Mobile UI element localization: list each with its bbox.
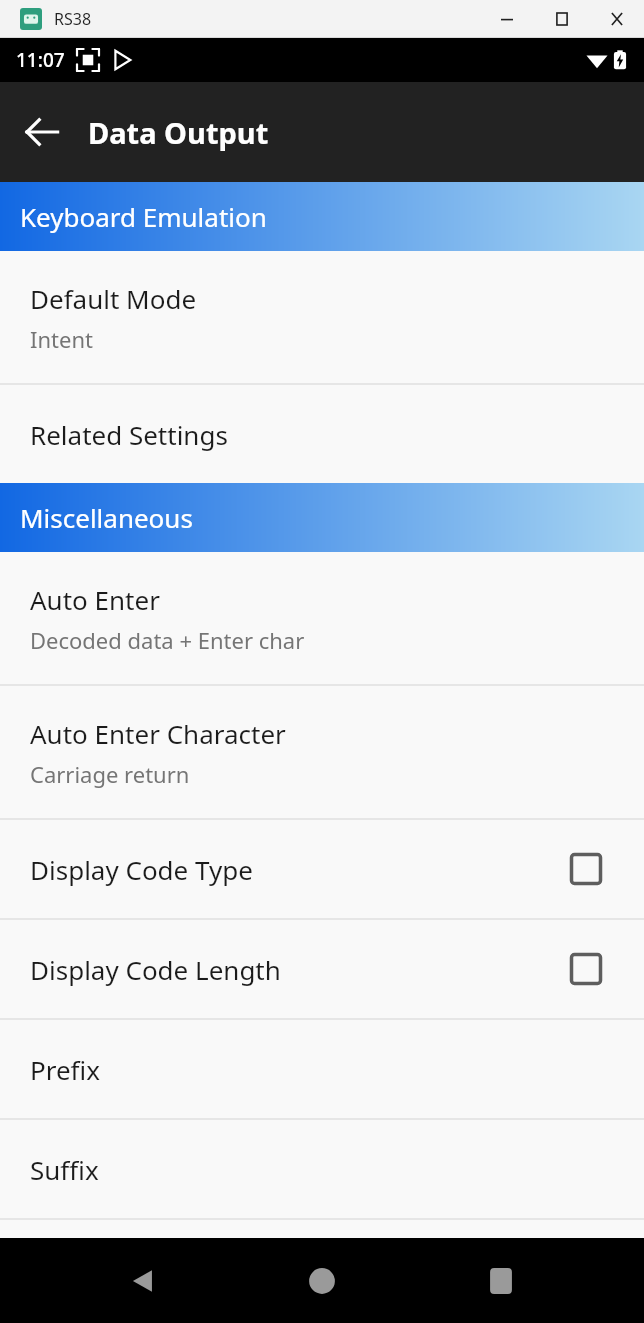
button[interactable]: Auto Enter bbox=[0, 552, 644, 684]
staticText: Intent bbox=[30, 324, 93, 354]
staticText: Miscellaneous bbox=[20, 500, 193, 535]
button[interactable]: Related Settings bbox=[0, 385, 644, 483]
staticText: Decoded data + Enter char bbox=[30, 625, 305, 655]
button[interactable]: Back bbox=[14, 104, 70, 160]
button[interactable]: Auto Enter Character bbox=[0, 686, 644, 818]
button[interactable]: Display Code Type bbox=[0, 820, 644, 918]
staticText: Prefix bbox=[30, 1052, 101, 1087]
button[interactable]: Prefix bbox=[0, 1020, 644, 1118]
button[interactable]: Minimize bbox=[479, 0, 534, 38]
staticText: Related Settings bbox=[30, 417, 228, 452]
staticText: 11:07 bbox=[16, 47, 65, 73]
staticText: Display Code Type bbox=[30, 852, 570, 887]
staticText: Auto Enter Character bbox=[30, 716, 286, 751]
staticText: Keyboard Emulation bbox=[20, 199, 267, 234]
button[interactable]: Maximize bbox=[534, 0, 589, 38]
button[interactable]: Default Mode bbox=[0, 251, 644, 383]
button[interactable]: Home bbox=[286, 1245, 358, 1317]
staticText: Carriage return bbox=[30, 759, 190, 789]
staticText: Auto Enter bbox=[30, 582, 160, 617]
button[interactable]: Display Code Length bbox=[0, 920, 644, 1018]
staticText: Display Code Length bbox=[30, 952, 570, 987]
button[interactable]: Recent apps bbox=[465, 1245, 537, 1317]
button[interactable]: Suffix bbox=[0, 1120, 644, 1218]
staticText: Default Mode bbox=[30, 281, 197, 316]
staticText: RS38 bbox=[54, 8, 92, 30]
button[interactable]: Close bbox=[589, 0, 644, 38]
staticText: Data Output bbox=[88, 113, 269, 152]
staticText: Suffix bbox=[30, 1152, 99, 1187]
button[interactable]: Back bbox=[107, 1245, 179, 1317]
